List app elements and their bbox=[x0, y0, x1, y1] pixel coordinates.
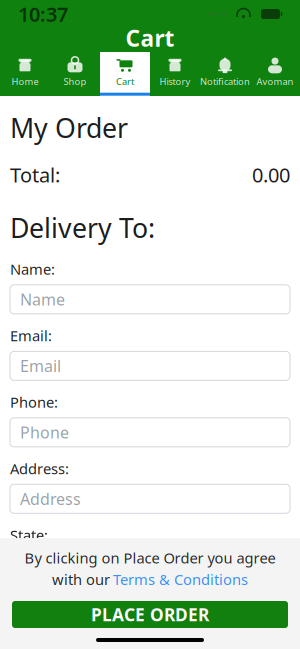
staticText: Address: bbox=[10, 459, 69, 478]
staticText: Name bbox=[20, 289, 65, 310]
staticText: Notification bbox=[200, 75, 250, 88]
staticText: Email: bbox=[10, 326, 52, 345]
staticText: Address bbox=[20, 488, 81, 509]
staticText: City: bbox=[10, 593, 39, 612]
button[interactable]: Email bbox=[10, 351, 290, 380]
staticText: Cart bbox=[125, 23, 174, 53]
staticText: Name: bbox=[10, 259, 55, 279]
button[interactable]: Phone bbox=[10, 418, 290, 447]
button[interactable]: Victoria bbox=[10, 551, 290, 581]
staticText: Phone bbox=[20, 422, 69, 443]
button[interactable]: Notification bbox=[200, 52, 250, 96]
staticText: with our bbox=[52, 569, 110, 589]
staticText: State: bbox=[10, 525, 48, 545]
button[interactable]: Address bbox=[10, 484, 290, 513]
button[interactable]: Melbourne bbox=[10, 618, 290, 648]
button[interactable]: Cart bbox=[100, 52, 150, 96]
staticText: By clicking on Place Order you agree bbox=[24, 548, 275, 567]
button[interactable]: Avoman bbox=[250, 52, 300, 96]
staticText: History bbox=[159, 75, 190, 88]
staticText: 0.00 bbox=[252, 161, 290, 188]
staticText: Terms & Conditions bbox=[113, 569, 248, 589]
button[interactable]: Name bbox=[10, 285, 290, 314]
staticText: My Order bbox=[10, 110, 128, 145]
staticText: Shop bbox=[63, 75, 86, 88]
staticText: Delivery To: bbox=[10, 210, 155, 245]
button[interactable]: Home bbox=[0, 52, 50, 96]
staticText: Home bbox=[11, 75, 38, 88]
button[interactable]: Terms & Conditions bbox=[113, 569, 248, 589]
staticText: Victoria bbox=[20, 555, 78, 576]
staticText: Melbourne bbox=[20, 623, 104, 644]
button[interactable]: History bbox=[150, 52, 200, 96]
button[interactable]: Shop bbox=[50, 52, 100, 96]
staticText: Total: bbox=[10, 161, 60, 188]
staticText: 10:37 bbox=[18, 1, 68, 27]
staticText: PLACE ORDER bbox=[91, 603, 209, 626]
staticText: Phone: bbox=[10, 392, 58, 412]
staticText: Email bbox=[20, 355, 61, 376]
staticText: Cart bbox=[116, 75, 134, 88]
staticText: Avoman bbox=[256, 75, 293, 88]
button[interactable]: PLACE ORDER bbox=[12, 601, 288, 628]
